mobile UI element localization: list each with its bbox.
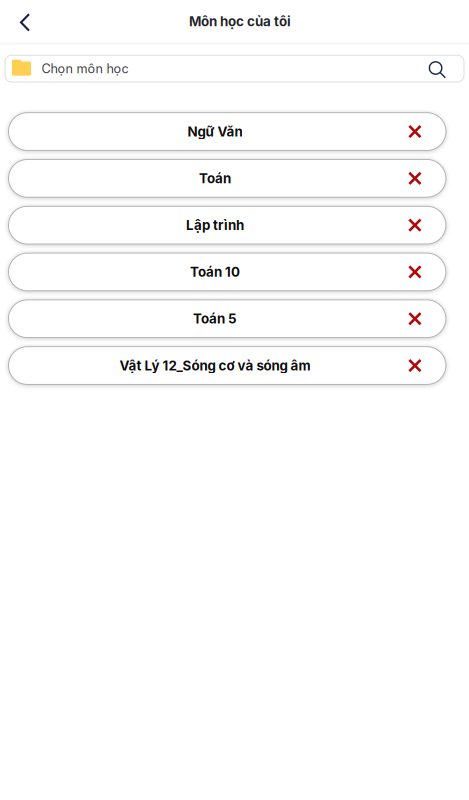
staticText: Toán 5 (193, 311, 237, 327)
staticText: Môn học của tôi (189, 13, 291, 29)
button[interactable]: Remove Toán (384, 159, 446, 197)
button[interactable]: Chọn môn học (0, 44, 469, 82)
button[interactable]: Remove Lập trình (384, 206, 446, 244)
button[interactable]: Remove Vật Lý 12_Sóng cơ và sóng âm (384, 347, 446, 384)
button[interactable]: Remove Ngữ Văn (384, 113, 446, 150)
staticText: Chọn môn học (41, 61, 128, 76)
button[interactable]: Back (0, 0, 48, 42)
button[interactable]: Remove Toán 5 (384, 300, 446, 338)
staticText: Vật Lý 12_Sóng cơ và sóng âm (119, 357, 310, 374)
staticText: Toán (199, 170, 231, 186)
button[interactable]: Remove Toán 10 (384, 253, 446, 291)
staticText: Toán 10 (190, 264, 240, 280)
staticText: Lập trình (186, 217, 244, 233)
staticText: Ngữ Văn (187, 123, 242, 140)
